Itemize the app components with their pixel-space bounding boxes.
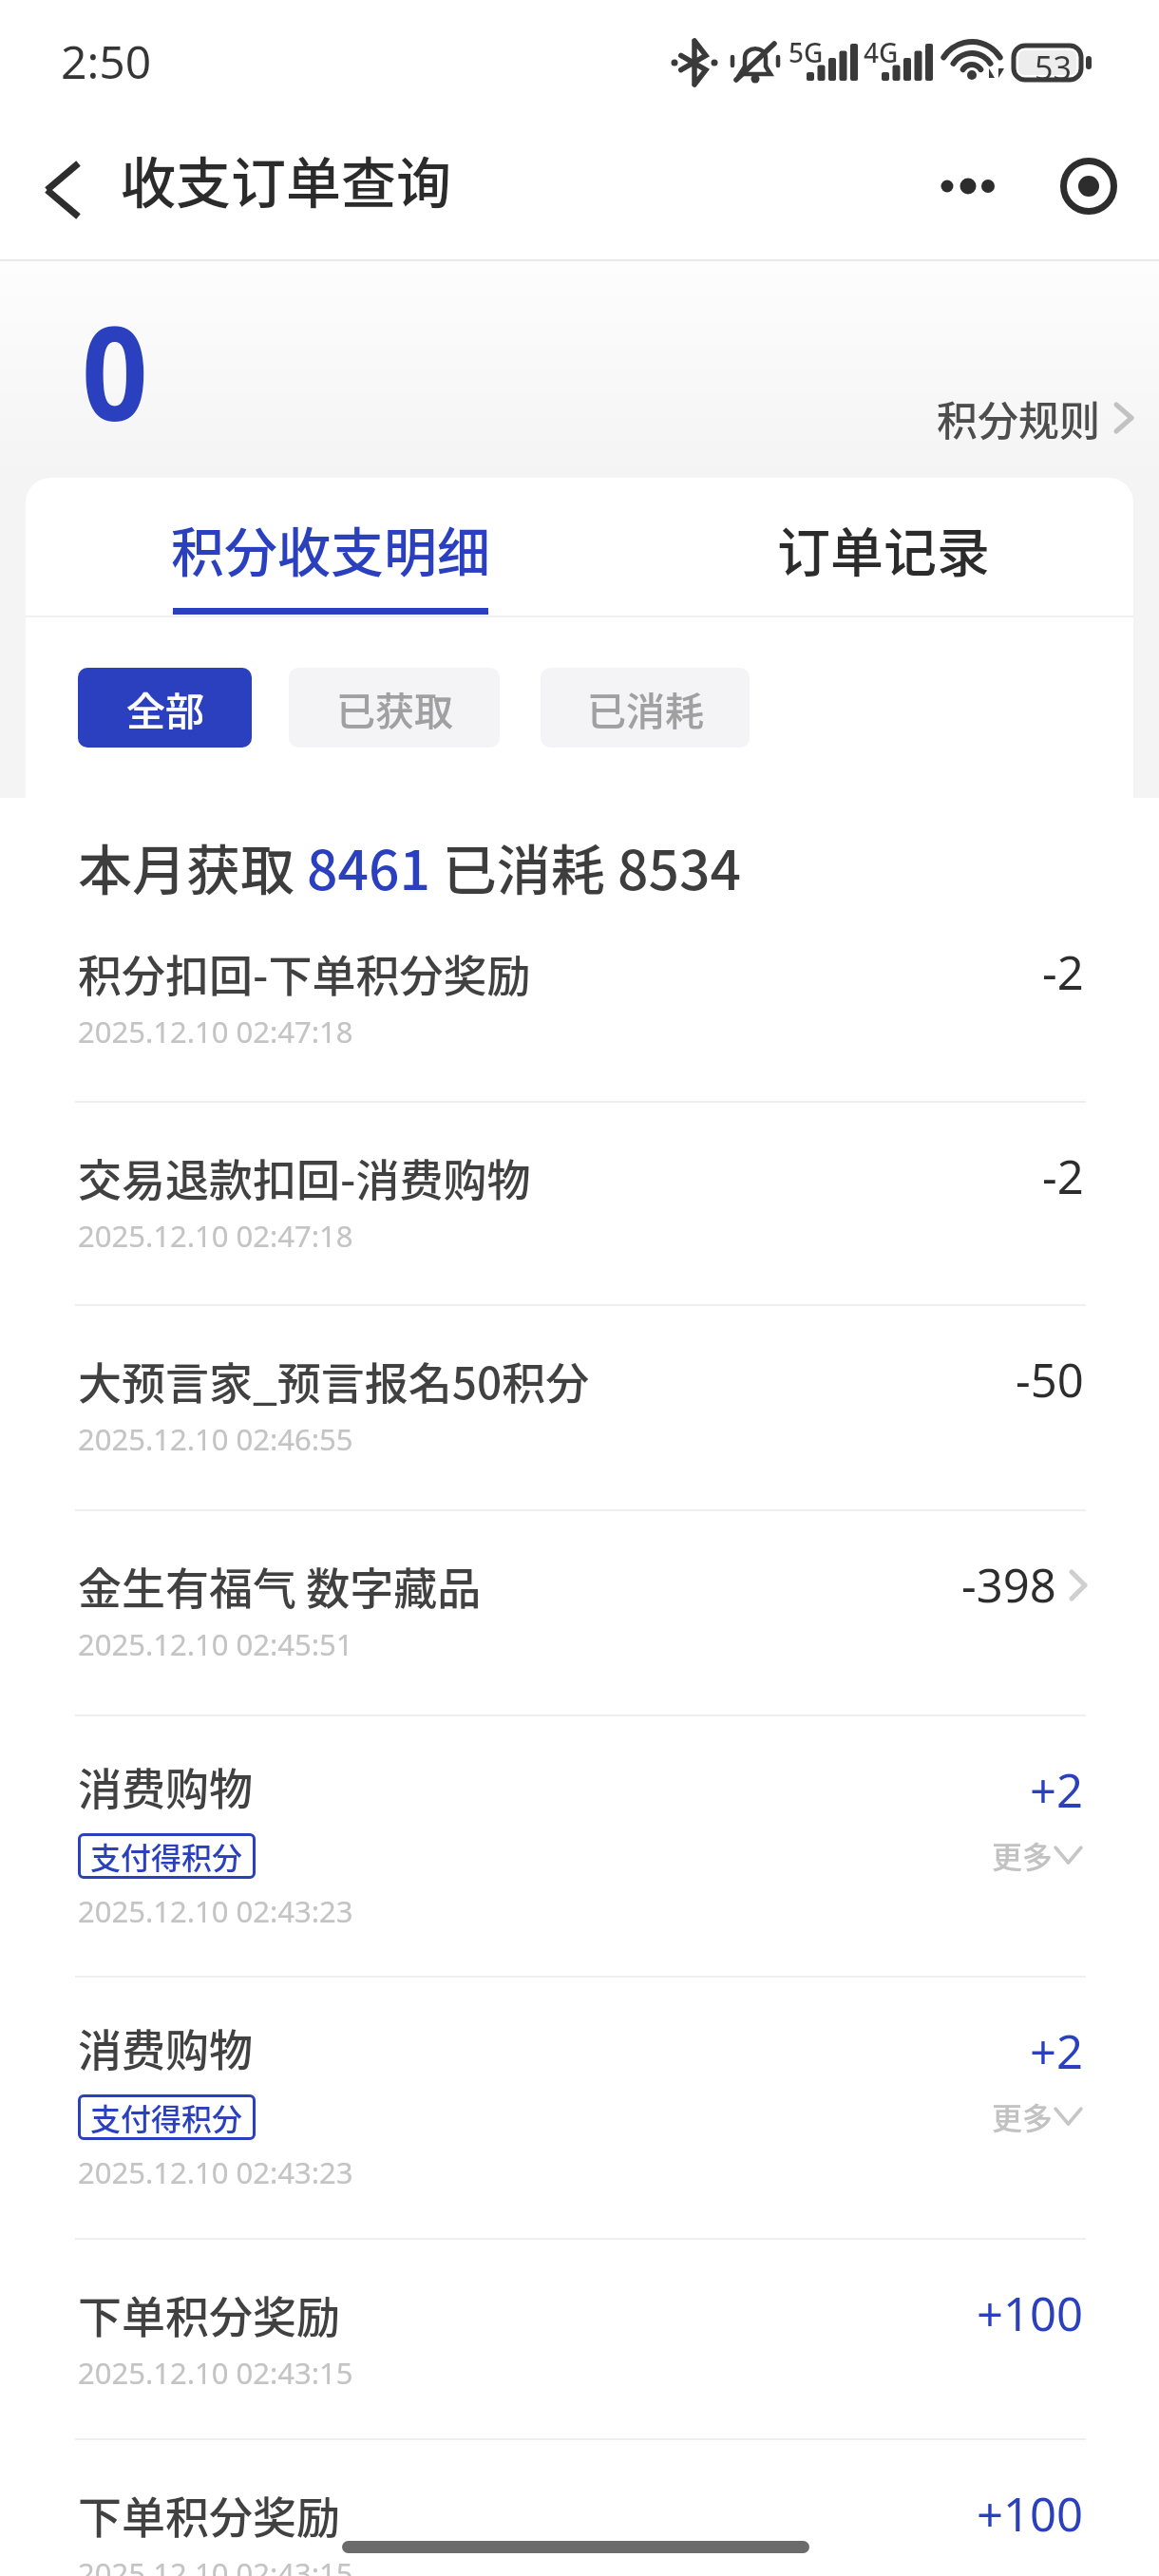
staticText: 0 [82, 282, 148, 460]
staticText: 支付得积分 [90, 1834, 243, 1878]
staticText: 2025.12.10 02:45:51 [78, 1624, 353, 1664]
button[interactable]: More options [920, 139, 1015, 234]
button[interactable]: 全部 [78, 668, 252, 748]
staticText: +100 [977, 2482, 1084, 2546]
staticText: 2025.12.10 02:47:18 [78, 1012, 353, 1051]
staticText: 积分收支明细 [171, 510, 490, 587]
staticText: -398 [961, 1553, 1056, 1617]
button[interactable]: 积分规则 [937, 388, 1136, 447]
staticText: -50 [1016, 1348, 1084, 1411]
button[interactable]: 已消耗 [541, 668, 750, 748]
button[interactable]: Back [10, 138, 115, 242]
staticText: 订单记录 [777, 510, 990, 587]
staticText: 2025.12.10 02:43:15 [78, 2553, 353, 2576]
staticText: 下单积分奖励 [78, 2483, 340, 2547]
button[interactable]: 更多 [992, 2094, 1083, 2138]
staticText: 收支订单查询 [121, 140, 452, 219]
staticText: 更多 [992, 1833, 1054, 1877]
staticText: 积分扣回-下单积分奖励 [78, 941, 531, 1005]
staticText: 消费购物 [78, 2016, 253, 2079]
staticText: -2 [1042, 940, 1084, 1004]
staticText: 交易退款扣回-消费购物 [78, 1146, 531, 1209]
staticText: 已获取 [336, 680, 453, 736]
staticText: 全部 [126, 680, 204, 736]
staticText: 2025.12.10 02:43:23 [78, 2152, 353, 2192]
button[interactable]: 交易退款扣回-消费购物 [0, 1103, 1159, 1306]
button[interactable]: 大预言家_预言报名50积分 [0, 1306, 1159, 1511]
staticText: 8534 [617, 827, 741, 906]
staticText: 2025.12.10 02:47:18 [78, 1216, 353, 1256]
button[interactable]: 更多 [992, 1833, 1083, 1877]
button[interactable]: 下单积分奖励 [0, 2240, 1159, 2440]
button[interactable]: 积分收支明细 [54, 478, 607, 616]
staticText: 支付得积分 [90, 2095, 243, 2139]
staticText: 金生有福气 数字藏品 [78, 1554, 482, 1618]
staticText: 消费购物 [78, 1754, 253, 1818]
staticText: +2 [1030, 1758, 1084, 1822]
staticText: 2025.12.10 02:46:55 [78, 1419, 353, 1459]
button[interactable]: 已获取 [289, 668, 500, 748]
button[interactable]: 金生有福气 数字藏品 [0, 1511, 1159, 1716]
staticText: 53 [1035, 46, 1072, 89]
staticText: -2 [1042, 1145, 1084, 1208]
button[interactable]: 积分扣回-下单积分奖励 [0, 899, 1159, 1103]
button[interactable]: Record [1041, 139, 1136, 234]
staticText: +100 [977, 2282, 1084, 2345]
staticText: 5G [788, 34, 824, 70]
staticText: 已消耗 [430, 827, 617, 906]
staticText: 更多 [992, 2094, 1054, 2138]
staticText: 2025.12.10 02:43:15 [78, 2353, 353, 2393]
button[interactable]: 下单积分奖励 [0, 2440, 1159, 2576]
staticText: 已消耗 [587, 680, 704, 736]
staticText: 2:50 [61, 30, 152, 92]
staticText: 本月获取 [78, 827, 307, 906]
button[interactable]: 订单记录 [607, 478, 1133, 616]
staticText: 下单积分奖励 [78, 2282, 340, 2346]
staticText: 4G [864, 34, 899, 70]
staticText: +2 [1030, 2019, 1084, 2083]
staticText: 大预言家_预言报名50积分 [78, 1349, 590, 1412]
staticText: 积分规则 [937, 388, 1100, 447]
button[interactable]: 消费购物 [0, 1716, 1159, 1978]
staticText: 2025.12.10 02:43:23 [78, 1891, 353, 1931]
staticText: 8461 [307, 827, 430, 906]
button[interactable]: 消费购物 [0, 1978, 1159, 2240]
